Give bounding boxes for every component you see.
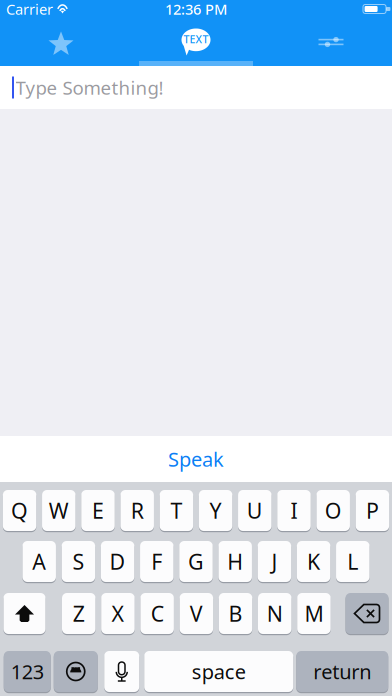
staticText: T: [170, 496, 182, 525]
button[interactable]: D: [101, 541, 134, 583]
staticText: TEXT: [183, 32, 208, 46]
button[interactable]: E: [81, 490, 115, 532]
button[interactable]: return: [296, 651, 388, 693]
staticText: C: [151, 599, 164, 628]
staticText: F: [151, 547, 162, 576]
button[interactable]: S: [62, 541, 95, 583]
button[interactable]: T: [160, 490, 193, 532]
button[interactable]: O: [316, 490, 350, 532]
button[interactable]: I: [277, 490, 311, 532]
button[interactable]: V: [180, 593, 213, 635]
staticText: R: [131, 496, 144, 525]
button[interactable]: Emoji: [54, 651, 98, 693]
staticText: P: [366, 496, 379, 525]
staticText: I: [290, 496, 297, 525]
staticText: J: [271, 547, 277, 576]
staticText: V: [190, 599, 203, 628]
button[interactable]: X: [101, 593, 135, 635]
staticText: W: [49, 496, 69, 525]
staticText: D: [110, 547, 126, 576]
button[interactable]: C: [140, 593, 174, 635]
staticText: Carrier: [6, 0, 53, 19]
button[interactable]: Shift: [3, 593, 45, 635]
staticText: G: [188, 547, 204, 576]
button[interactable]: P: [356, 490, 389, 532]
staticText: A: [32, 547, 46, 576]
staticText: U: [247, 496, 263, 525]
button[interactable]: B: [219, 593, 252, 635]
staticText: M: [304, 599, 323, 628]
staticText: 123: [11, 658, 44, 685]
button[interactable]: F: [140, 541, 174, 583]
staticText: H: [227, 547, 243, 576]
staticText: Type Something!: [15, 75, 163, 100]
button[interactable]: G: [179, 541, 213, 583]
button[interactable]: space: [144, 651, 293, 693]
button[interactable]: Numbers: [4, 651, 51, 693]
button[interactable]: Dictate: [104, 651, 139, 693]
button[interactable]: Favorites: [0, 18, 122, 66]
staticText: Z: [73, 599, 85, 628]
staticText: Speak: [168, 446, 224, 472]
staticText: E: [92, 496, 104, 525]
button[interactable]: Settings: [270, 18, 392, 66]
staticText: O: [325, 496, 342, 525]
staticText: K: [307, 547, 320, 576]
button[interactable]: H: [218, 541, 252, 583]
button[interactable]: K: [297, 541, 330, 583]
staticText: L: [347, 547, 358, 576]
button[interactable]: Z: [62, 593, 95, 635]
button[interactable]: R: [120, 490, 154, 532]
button[interactable]: N: [258, 593, 291, 635]
button[interactable]: Text: [122, 18, 270, 66]
staticText: return: [313, 658, 371, 685]
staticText: B: [229, 599, 243, 628]
staticText: N: [267, 599, 283, 628]
button[interactable]: M: [297, 593, 331, 635]
button[interactable]: Speak: [0, 436, 392, 482]
staticText: Y: [210, 496, 222, 525]
staticText: X: [111, 599, 124, 628]
button[interactable]: Delete: [345, 593, 388, 635]
button[interactable]: W: [42, 490, 75, 532]
button[interactable]: A: [22, 541, 56, 583]
staticText: 12:36 PM: [165, 0, 227, 19]
button[interactable]: Y: [199, 490, 232, 532]
button[interactable]: Q: [3, 490, 36, 532]
staticText: Q: [11, 496, 28, 525]
staticText: space: [192, 658, 246, 685]
button[interactable]: J: [258, 541, 291, 583]
button[interactable]: U: [238, 490, 271, 532]
staticText: S: [72, 547, 84, 576]
button[interactable]: L: [336, 541, 369, 583]
